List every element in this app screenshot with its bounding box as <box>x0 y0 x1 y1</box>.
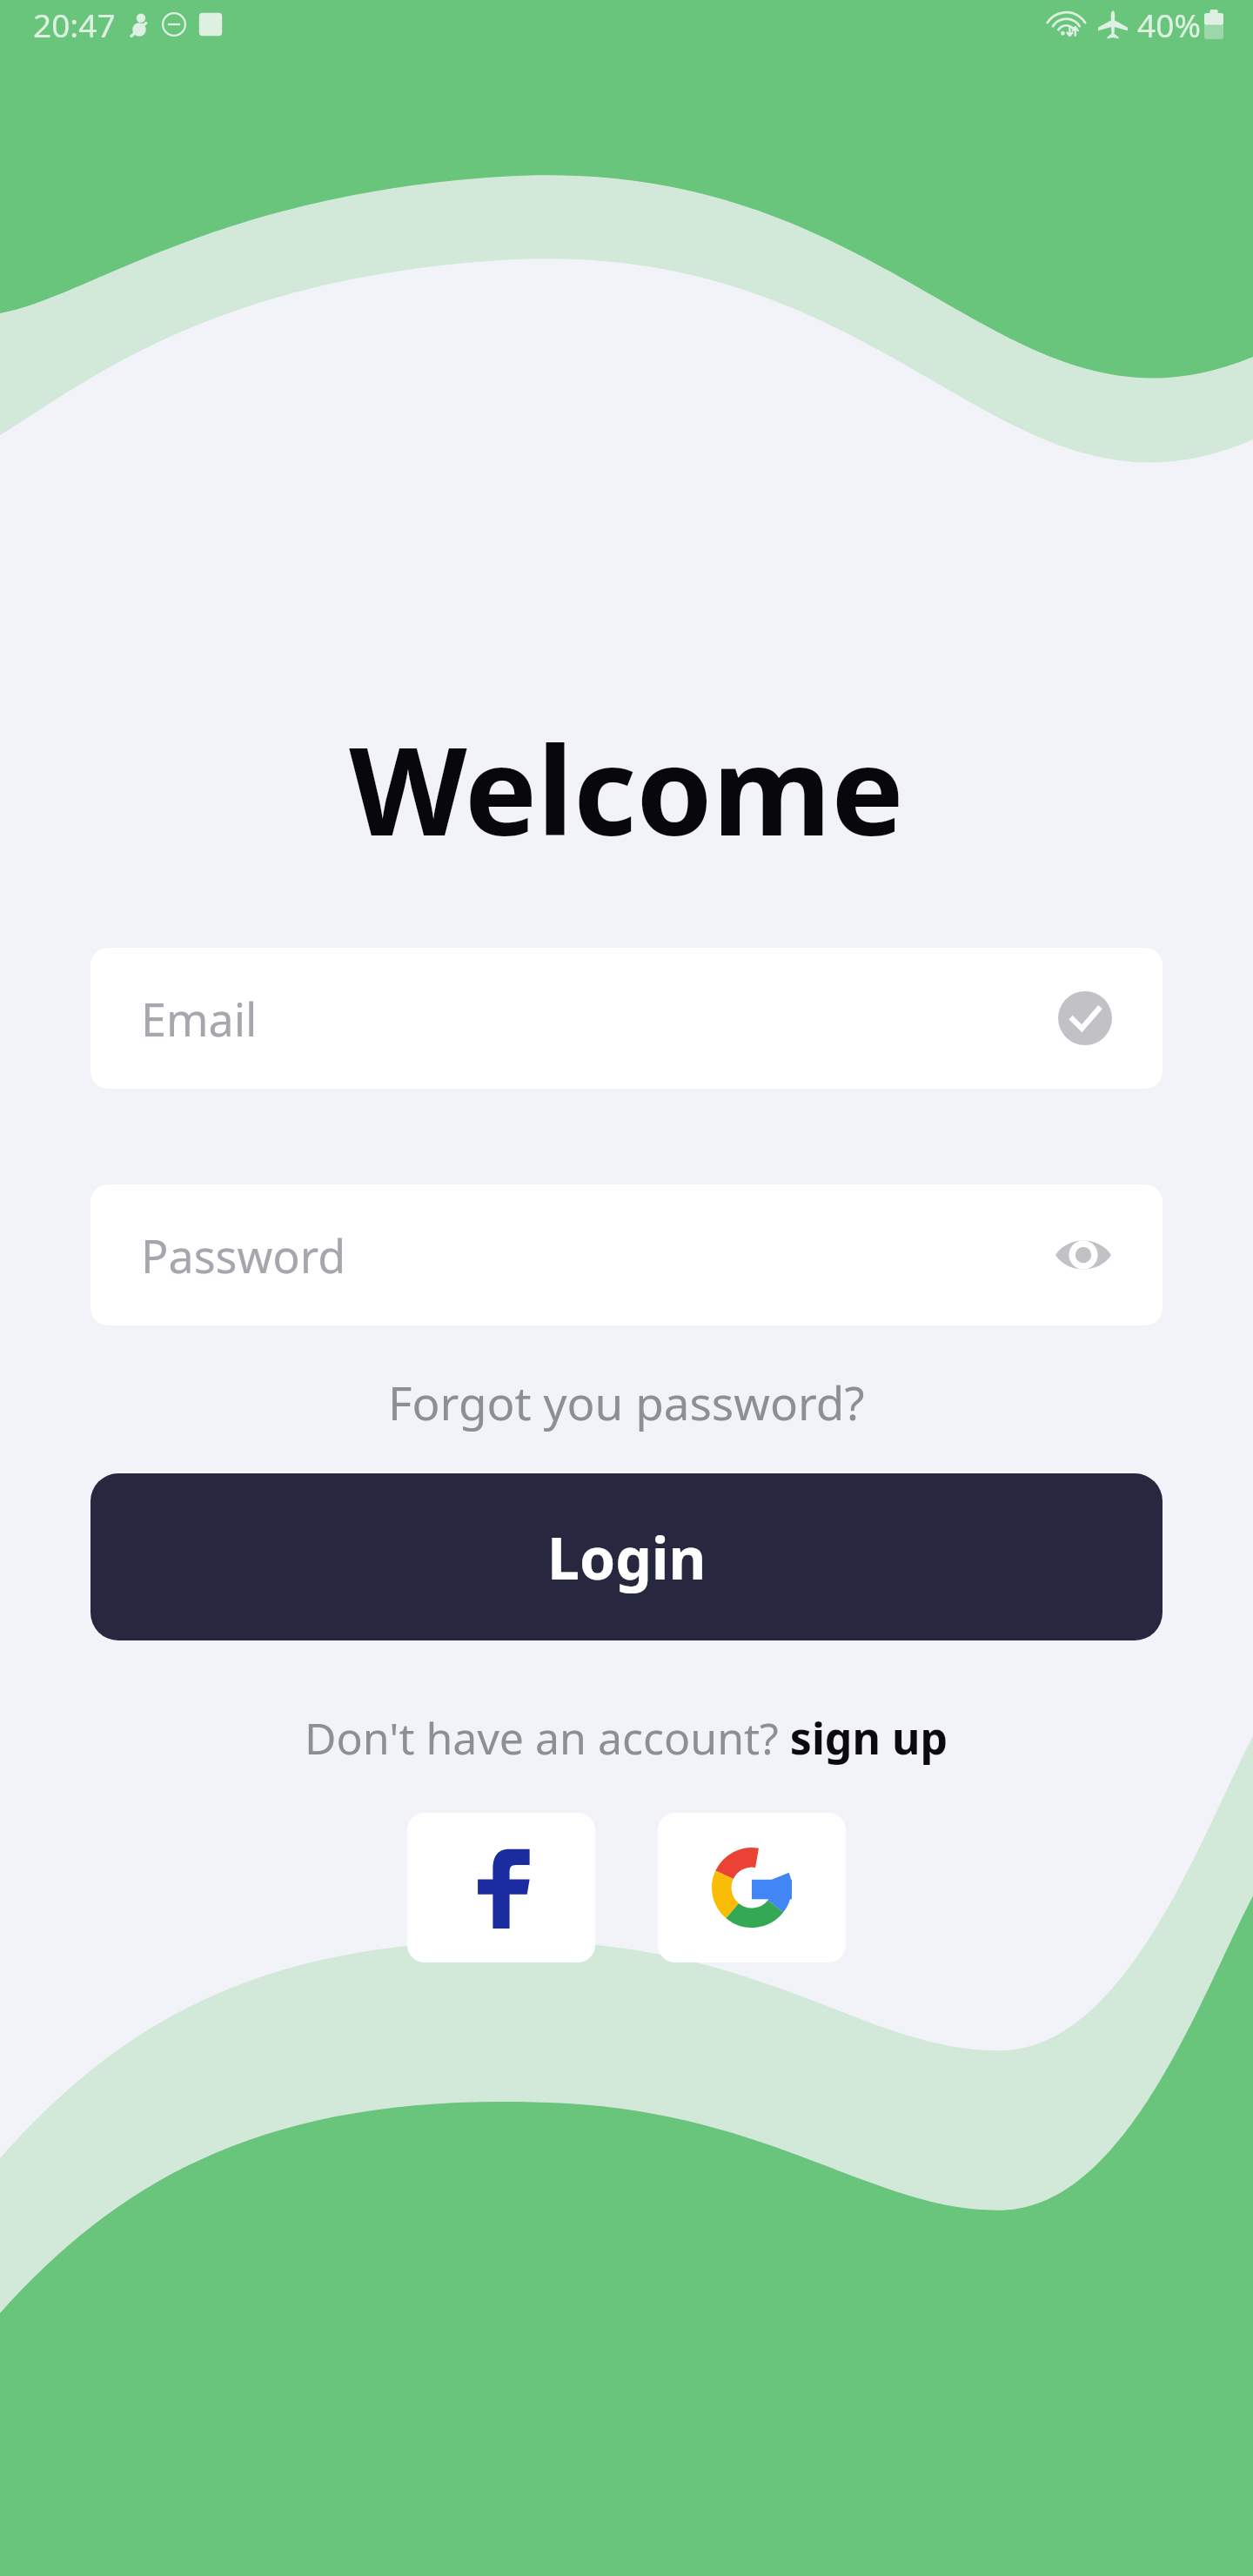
staticText: Forgot you password? <box>388 1371 865 1433</box>
staticText: Login <box>547 1518 707 1596</box>
button[interactable]: Sign in with Google <box>658 1813 846 1962</box>
staticText: 40% <box>1137 3 1202 46</box>
button[interactable]: Sign in with Facebook <box>407 1813 595 1962</box>
staticText: Password <box>141 1224 1055 1286</box>
button[interactable]: Don't have an account? sign up <box>0 1708 1253 1768</box>
staticText: Welcome <box>0 705 1253 871</box>
button[interactable]: Password <box>90 1184 1163 1325</box>
staticText: 20:47 <box>33 3 116 46</box>
staticText: Don't have an account? sign up <box>305 1708 948 1768</box>
button[interactable]: Email <box>90 948 1163 1089</box>
button[interactable]: Show password <box>1055 1226 1112 1284</box>
button[interactable]: Login <box>90 1473 1163 1640</box>
staticText: Email <box>141 988 1058 1050</box>
button[interactable]: Forgot you password? <box>0 1371 1253 1433</box>
